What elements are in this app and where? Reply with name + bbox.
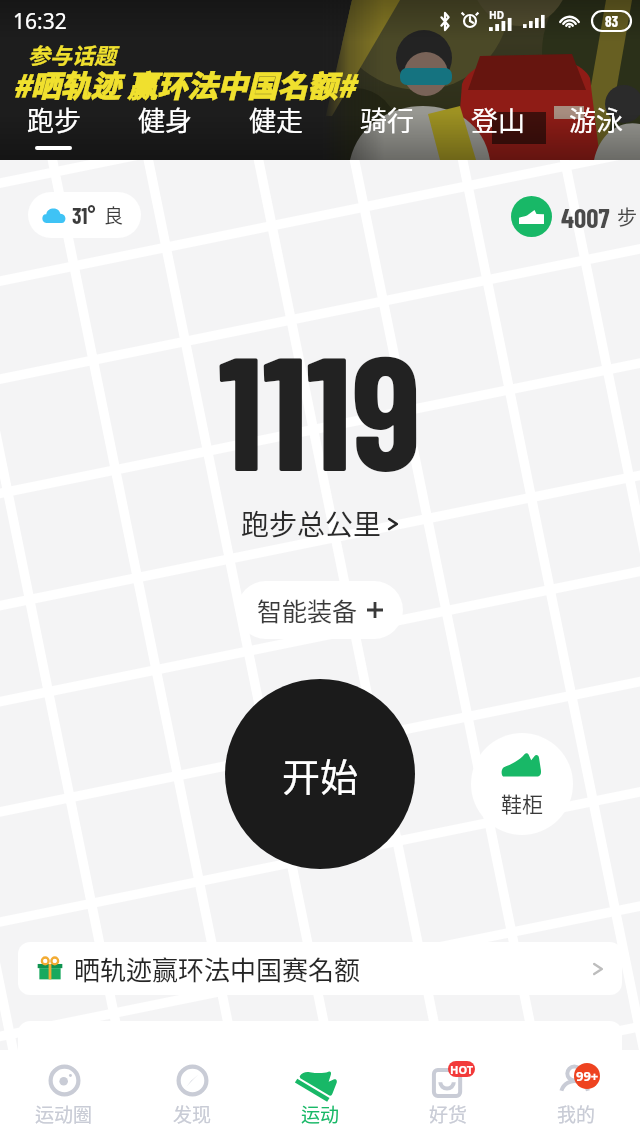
staticText: 运动 <box>301 1100 340 1128</box>
button[interactable]: 游泳 <box>553 100 638 150</box>
staticText: 骑行 <box>360 100 414 139</box>
button[interactable]: 健身 <box>109 100 220 150</box>
staticText: 登山 <box>471 100 525 139</box>
staticText: 31° <box>72 202 96 228</box>
button[interactable]: 骑行 <box>331 100 442 150</box>
staticText: 1119 <box>218 311 422 503</box>
staticText: 16:32 <box>13 7 67 36</box>
button[interactable]: 鞋柜 <box>471 733 573 835</box>
button[interactable]: 晒轨迹赢环法中国赛名额 <box>18 942 622 995</box>
staticText: 跑步 <box>27 100 81 139</box>
staticText: 跑步总公里 <box>241 503 382 544</box>
staticText: 开始 <box>282 747 359 802</box>
button[interactable]: 开始 <box>225 679 415 869</box>
staticText: 智能装备 <box>257 592 358 628</box>
button[interactable]: HOT <box>384 1055 512 1134</box>
staticText: 我的 <box>557 1100 596 1128</box>
button[interactable]: 跑步 <box>0 100 109 150</box>
button[interactable]: 健走 <box>220 100 331 150</box>
staticText: HD <box>489 8 504 22</box>
staticText: HOT <box>450 1062 474 1077</box>
staticText: 鞋柜 <box>501 788 543 818</box>
staticText: 运动圈 <box>35 1100 93 1128</box>
staticText: 参与话题 <box>28 38 117 70</box>
staticText: 良 <box>104 201 124 229</box>
button[interactable]: 智能装备 <box>237 581 403 639</box>
staticText: #晒轨迹 赢环法中国名额# <box>13 62 356 105</box>
button[interactable] <box>18 1021 622 1081</box>
button[interactable]: 31° <box>28 192 141 238</box>
button[interactable]: 运动圈 <box>0 1055 128 1134</box>
staticText: 健身 <box>138 100 192 139</box>
button[interactable]: 4007 <box>511 196 637 237</box>
staticText: 晒轨迹赢环法中国赛名额 <box>74 950 361 988</box>
staticText: 健走 <box>249 100 303 139</box>
button[interactable]: 99+ <box>512 1055 640 1134</box>
button[interactable]: 跑步总公里 <box>241 503 399 544</box>
button[interactable]: 登山 <box>442 100 553 150</box>
staticText: 4007 <box>561 201 610 233</box>
button[interactable]: 运动 <box>256 1055 384 1134</box>
staticText: 步 <box>617 202 637 231</box>
staticText: 游泳 <box>569 100 623 139</box>
staticText: 发现 <box>173 1100 212 1128</box>
button[interactable]: 发现 <box>128 1055 256 1134</box>
staticText: 99+ <box>576 1067 599 1085</box>
staticText: 83 <box>605 12 619 30</box>
staticText: 好货 <box>429 1100 468 1128</box>
